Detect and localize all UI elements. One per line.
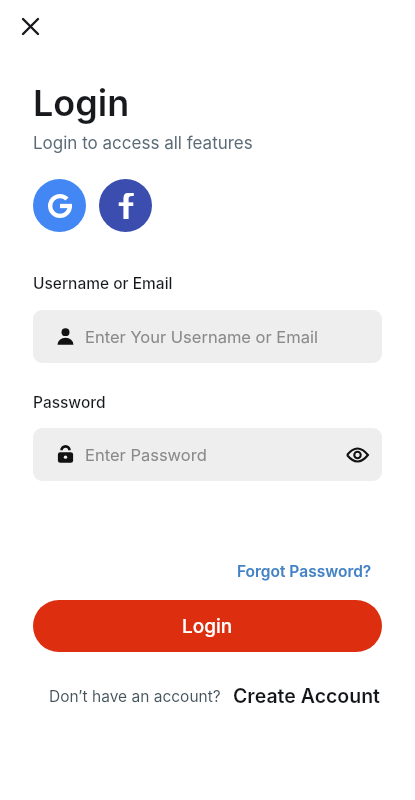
staticText: Enter Your Username or Email [85, 327, 318, 347]
staticText: Password [33, 393, 106, 412]
staticText: Username or Email [33, 274, 173, 293]
button[interactable]: Enter Password [33, 428, 382, 481]
button[interactable]: Enter Your Username or Email [33, 310, 382, 363]
staticText: Don’t have an account? [49, 687, 221, 706]
button[interactable]: Create Account [233, 684, 380, 708]
staticText: Enter Password [85, 445, 207, 465]
button[interactable] [33, 179, 86, 232]
staticText: Login [182, 615, 233, 638]
staticText: Login [33, 81, 130, 125]
button[interactable] [99, 179, 152, 232]
staticText: Create Account [233, 684, 380, 708]
staticText: Login to access all features [33, 133, 253, 154]
button[interactable] [342, 440, 372, 470]
button[interactable]: Forgot Password? [237, 562, 372, 581]
staticText: Forgot Password? [237, 562, 372, 581]
button[interactable]: Login [33, 600, 382, 652]
button[interactable] [14, 10, 46, 42]
